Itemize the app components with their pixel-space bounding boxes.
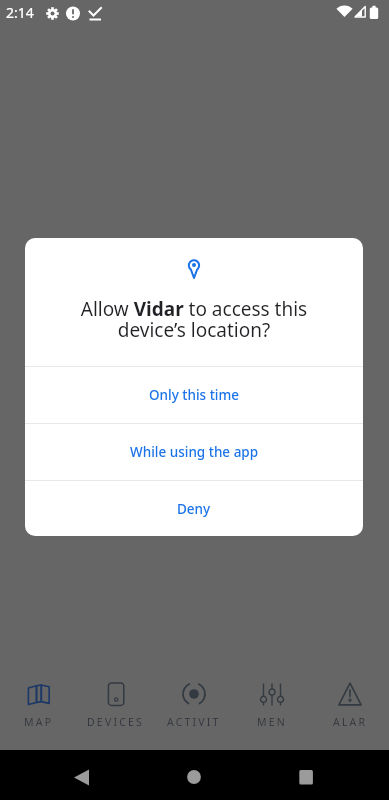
staticText: Deny bbox=[177, 500, 211, 518]
staticText: 2:14 bbox=[6, 3, 34, 22]
button[interactable]: ACTIVIT bbox=[155, 662, 233, 750]
staticText: DEVICES bbox=[87, 715, 145, 729]
button[interactable] bbox=[169, 754, 219, 800]
button[interactable]: Only this time bbox=[25, 367, 363, 423]
button[interactable]: Deny bbox=[25, 481, 363, 536]
staticText: ALAR bbox=[333, 715, 368, 729]
staticText: Only this time bbox=[149, 386, 240, 404]
staticText: While using the app bbox=[130, 443, 259, 461]
staticText: Allow Vidar to access this device’s loca… bbox=[25, 296, 363, 343]
button[interactable] bbox=[56, 754, 106, 800]
button[interactable]: MAP bbox=[0, 662, 77, 750]
staticText: MAP bbox=[24, 715, 54, 729]
button[interactable] bbox=[281, 754, 331, 800]
button[interactable]: MEN bbox=[233, 662, 311, 750]
button[interactable]: ALAR bbox=[311, 662, 389, 750]
button[interactable]: DEVICES bbox=[77, 662, 155, 750]
staticText: ACTIVIT bbox=[167, 715, 221, 729]
button[interactable]: While using the app bbox=[25, 424, 363, 480]
staticText: MEN bbox=[257, 715, 287, 729]
